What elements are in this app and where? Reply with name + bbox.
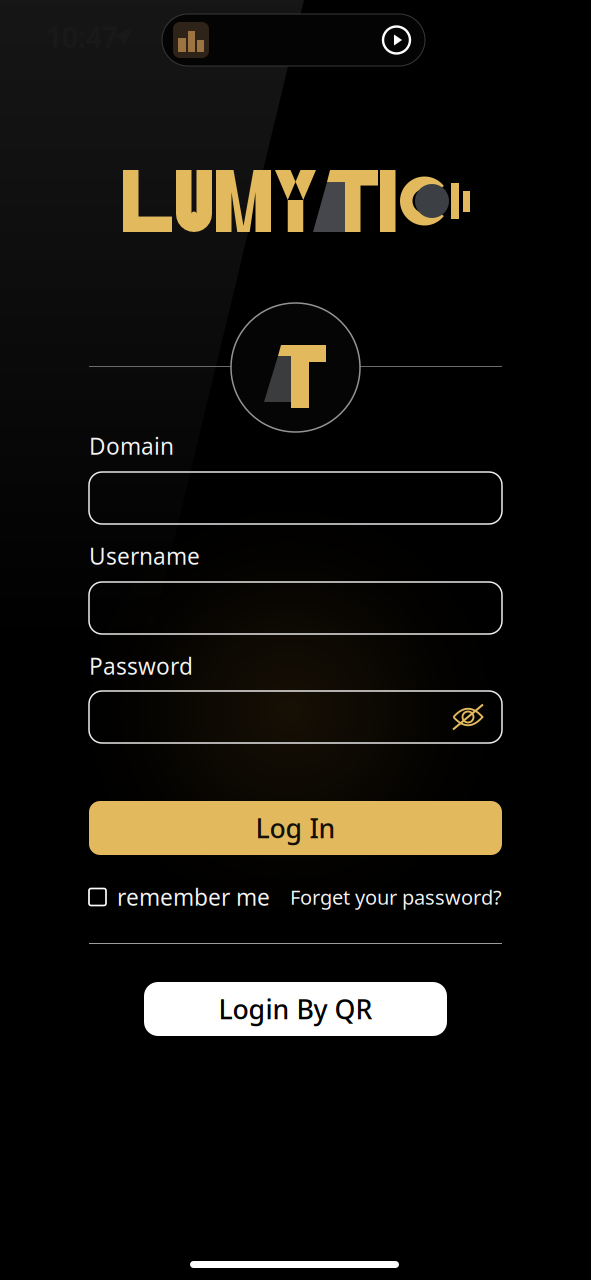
button[interactable]: Login By QR — [144, 982, 447, 1036]
staticText: Login By QR — [218, 991, 372, 1027]
staticText: Password — [89, 651, 193, 681]
staticText: remember me — [117, 882, 270, 912]
button[interactable]: Show password — [452, 703, 484, 731]
button[interactable]: Forget your password? — [212, 884, 502, 910]
button[interactable]: remember me — [89, 884, 299, 910]
button[interactable] — [89, 691, 502, 743]
staticText: Forget your password? — [290, 884, 502, 910]
staticText: Username — [89, 541, 200, 571]
button[interactable] — [89, 582, 502, 634]
button[interactable]: Log In — [89, 801, 502, 855]
staticText: Log In — [255, 810, 335, 846]
button[interactable] — [89, 472, 502, 524]
staticText: Domain — [89, 431, 174, 461]
